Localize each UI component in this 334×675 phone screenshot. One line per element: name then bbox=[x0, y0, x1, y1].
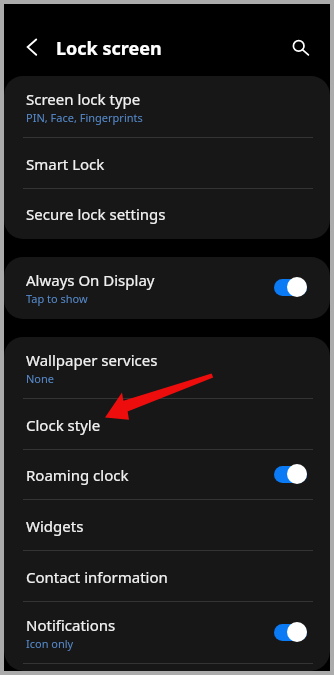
button[interactable]: Toggle Always On Display bbox=[274, 277, 307, 297]
button[interactable]: Roaming clock bbox=[4, 450, 330, 500]
button[interactable]: Smart Lock bbox=[4, 138, 330, 189]
staticText: Screen lock type bbox=[26, 89, 141, 109]
button[interactable]: Widgets bbox=[4, 500, 330, 551]
button[interactable]: Toggle Roaming clock bbox=[274, 464, 307, 484]
staticText: Icon only bbox=[26, 636, 74, 651]
button[interactable]: Wallpaper services bbox=[4, 337, 330, 399]
button[interactable] bbox=[4, 664, 330, 671]
staticText: Roaming clock bbox=[26, 465, 129, 485]
button[interactable]: Contact information bbox=[4, 551, 330, 602]
staticText: None bbox=[26, 371, 55, 386]
button[interactable]: Secure lock settings bbox=[4, 189, 330, 239]
staticText: Clock style bbox=[26, 415, 101, 435]
button[interactable]: Toggle Notifications bbox=[274, 622, 307, 642]
button[interactable]: Notifications bbox=[4, 602, 330, 664]
staticText: Always On Display bbox=[26, 270, 155, 290]
staticText: Contact information bbox=[26, 567, 168, 587]
staticText: Tap to show bbox=[26, 291, 88, 306]
button[interactable]: Always On Display bbox=[4, 257, 330, 319]
button[interactable]: Screen lock type bbox=[4, 76, 330, 138]
button[interactable]: Search bbox=[284, 24, 320, 60]
staticText: Smart Lock bbox=[26, 154, 105, 174]
staticText: PIN, Face, Fingerprints bbox=[26, 110, 143, 125]
button[interactable]: Clock style bbox=[4, 399, 330, 450]
staticText: Lock screen bbox=[56, 36, 162, 61]
staticText: Notifications bbox=[26, 615, 116, 635]
staticText: Widgets bbox=[26, 516, 84, 536]
staticText: Secure lock settings bbox=[26, 204, 166, 224]
button[interactable]: Navigate up bbox=[14, 28, 50, 64]
staticText: Wallpaper services bbox=[26, 350, 158, 370]
